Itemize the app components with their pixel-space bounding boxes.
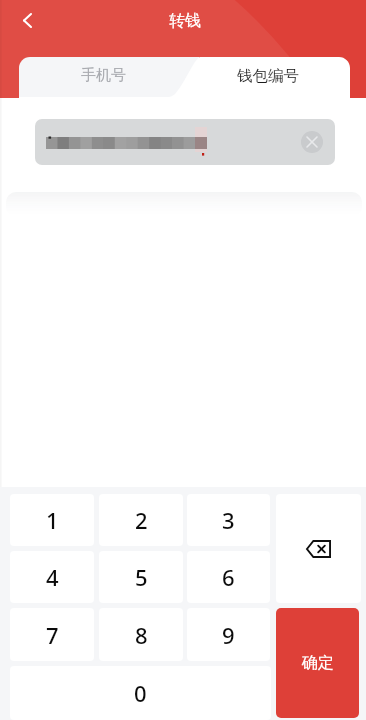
staticText: 2 <box>135 505 148 535</box>
button[interactable]: Back <box>10 3 45 38</box>
button[interactable]: Backspace <box>276 494 361 603</box>
staticText: 8 <box>135 620 148 650</box>
staticText: 手机号 <box>81 66 126 85</box>
button[interactable]: 确定 <box>276 608 359 718</box>
staticText: 6 <box>222 562 235 592</box>
staticText: 钱包编号 <box>237 66 299 86</box>
button[interactable]: 2 <box>99 494 183 546</box>
button[interactable]: Clear <box>301 131 323 153</box>
button[interactable]: 7 <box>10 608 94 661</box>
staticText: 7 <box>46 620 59 650</box>
staticText: 确定 <box>302 653 334 673</box>
button[interactable]: 4 <box>10 551 94 603</box>
button[interactable]: 手机号 <box>19 57 199 97</box>
button[interactable]: 6 <box>187 551 270 603</box>
button[interactable]: 5 <box>99 551 183 603</box>
button[interactable]: Clear <box>35 119 335 165</box>
staticText: 9 <box>222 620 235 650</box>
button[interactable]: 0 <box>10 666 271 720</box>
staticText: 3 <box>222 505 235 535</box>
staticText: 0 <box>134 678 147 708</box>
staticText: 转钱 <box>169 11 201 31</box>
staticText: 1 <box>46 505 59 535</box>
button[interactable]: 9 <box>187 608 270 661</box>
button[interactable]: 1 <box>10 494 94 546</box>
staticText: 4 <box>46 562 59 592</box>
button[interactable]: 3 <box>187 494 270 546</box>
staticText: 5 <box>135 562 148 592</box>
button[interactable]: 8 <box>99 608 183 661</box>
